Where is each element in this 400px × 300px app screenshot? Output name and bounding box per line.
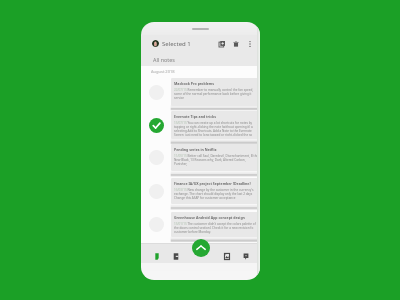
button[interactable]: Finance IA/UX project September [Deadlin…	[141, 178, 260, 204]
button[interactable]: Move to notebook	[217, 39, 226, 48]
button[interactable]: All notes	[141, 52, 260, 66]
button[interactable]: Pending series in Netflix	[141, 144, 260, 171]
button[interactable]: Notebooks	[170, 251, 181, 262]
button[interactable]: More options	[245, 39, 254, 48]
button[interactable]: Greenhouse Android App concept design	[141, 212, 260, 237]
staticText: 15/07/15 You can create up a lot shortcu…	[174, 121, 259, 136]
button[interactable]: Notes	[151, 251, 162, 262]
button[interactable]: Scroll to top	[192, 239, 210, 257]
staticText: Selected 1	[162, 40, 191, 48]
staticText: Evernote Tips and tricks	[174, 114, 216, 119]
staticText: Greenhouse Android App concept design	[174, 215, 245, 220]
staticText: Macbook Pro problems	[174, 81, 215, 86]
button[interactable]: Evernote Tips and tricks	[141, 111, 260, 139]
staticText: 16/03/15 New change by the customer in t…	[174, 188, 259, 200]
staticText: Pending series in Netflix	[174, 147, 217, 152]
staticText: 22/07/15 Remember to manually control th…	[174, 88, 259, 100]
staticText: 11/05/15 Better call Saul, Daredevil, Di…	[174, 154, 259, 166]
button[interactable]: Tags	[221, 251, 232, 262]
button[interactable]: Profile	[152, 40, 159, 47]
button[interactable]: Chat	[240, 251, 251, 262]
button[interactable]: Delete	[231, 39, 240, 48]
button[interactable]: Macbook Pro problems	[141, 78, 260, 106]
staticText: 15/01/15 The customer didn't accept the …	[174, 222, 259, 234]
staticText: August 2018	[151, 69, 175, 74]
staticText: All notes	[153, 56, 175, 63]
staticText: Finance IA/UX project September [Deadlin…	[174, 181, 251, 186]
